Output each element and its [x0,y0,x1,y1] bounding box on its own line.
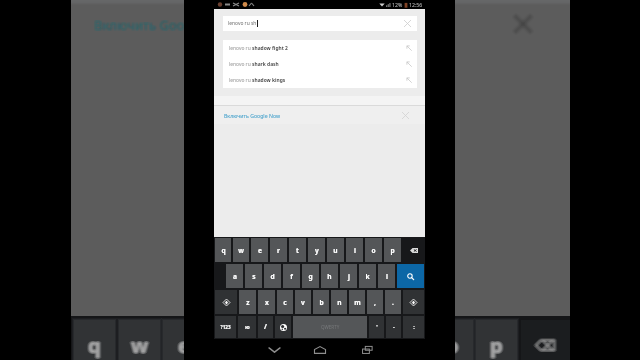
button[interactable]: / [258,316,273,338]
staticText: ⌫ [536,336,558,353]
staticText: ⌫ [537,337,559,354]
staticText: b [319,298,324,307]
button[interactable]: c [277,290,293,314]
staticText: k [365,272,370,281]
staticText: e [178,331,190,358]
button[interactable]: Включить Google Now [214,106,425,124]
button[interactable]: f [283,264,300,288]
staticText: / [264,322,267,332]
button[interactable]: ю [238,316,256,338]
button[interactable]: z [239,290,256,314]
staticText: , [374,298,376,307]
button[interactable]: p [384,238,401,262]
button[interactable]: lenovo ru [223,56,417,72]
staticText: t [269,331,278,358]
button[interactable]: d [264,264,281,288]
staticText: u [357,333,370,360]
staticText: y [313,333,325,360]
staticText: u [358,332,371,359]
button[interactable]: u [327,238,344,262]
button[interactable]: k [359,264,376,288]
staticText: u [355,333,368,360]
staticText: Включить Google Now [94,17,235,35]
staticText: w [132,333,150,360]
staticText: e [176,332,188,359]
button[interactable]: s [245,264,262,288]
staticText: i [406,331,412,358]
button[interactable]: Backspace [402,237,425,263]
button[interactable]: t [289,238,306,262]
button[interactable]: o [365,238,382,262]
staticText: p [490,332,503,359]
staticText: lenovo ru [229,45,252,52]
button[interactable]: Hide keyboard [264,339,284,360]
staticText: t [269,333,278,360]
staticText: lenovo ru sh [228,20,257,27]
button[interactable]: g [302,264,319,288]
button[interactable]: r [270,238,287,262]
button[interactable]: n [331,290,347,314]
staticText: q [89,333,102,360]
staticText: q [88,332,101,359]
button[interactable]: a [226,264,243,288]
button[interactable]: w [233,238,249,262]
staticText: o [446,332,459,359]
staticText: l [386,272,388,281]
button[interactable]: Search [397,264,424,288]
staticText: y [315,246,319,255]
button[interactable]: m [349,290,365,314]
button[interactable]: Recents [357,339,377,360]
staticText: h [327,272,332,281]
button[interactable]: Home [310,339,330,360]
button[interactable]: v [295,290,311,314]
button[interactable]: y [308,238,325,262]
staticText: p [492,332,505,359]
button[interactable]: e [251,238,268,262]
button[interactable]: x [258,290,275,314]
staticText: ⌫ [535,337,557,354]
staticText: q [221,246,226,255]
button[interactable]: j [340,264,357,288]
button[interactable]: h [321,264,338,288]
button[interactable]: , [367,290,383,314]
staticText: m [354,298,361,307]
staticText: o [371,246,376,255]
button[interactable]: lenovo ru sh [223,16,417,31]
staticText: r [223,331,232,358]
staticText: i [406,333,412,360]
button[interactable]: Shift [215,290,237,314]
staticText: p [490,331,503,358]
staticText: QWERTY [321,324,340,330]
button[interactable]: q [215,238,231,262]
staticText: q [90,332,103,359]
button[interactable]: Change language [275,316,291,338]
button[interactable]: ' [369,316,384,338]
staticText: p [491,331,504,358]
button[interactable]: Shift [403,290,424,314]
staticText: e [179,333,191,360]
staticText: : [413,323,415,331]
staticText: Включить Google Now [93,17,234,35]
button[interactable]: i [346,238,363,262]
button[interactable]: - [386,316,401,338]
staticText: t [271,332,280,359]
staticText: Включить Google Now [94,16,235,34]
staticText: o [445,333,458,360]
staticText: ⌫ [535,336,557,353]
staticText: e [258,246,262,255]
staticText: Включить Google Now [95,15,236,33]
button[interactable]: lenovo ru [223,72,417,88]
staticText: u [356,333,369,360]
staticText: shadow kings [252,77,286,84]
staticText: i [407,332,413,359]
button[interactable]: lenovo ru [223,40,417,56]
staticText: r [224,332,233,359]
button[interactable]: ?123 [215,316,236,338]
staticText: shark dash [252,61,279,68]
staticText: r [225,331,234,358]
button[interactable]: : [403,316,424,338]
button[interactable]: . [385,290,401,314]
button[interactable]: b [313,290,329,314]
button[interactable]: l [378,264,395,288]
